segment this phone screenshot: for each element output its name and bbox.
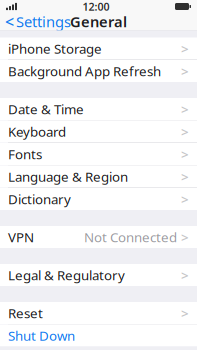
button[interactable]: Legal & Regulatory bbox=[0, 264, 197, 286]
staticText: > bbox=[181, 100, 189, 118]
staticText: Fonts bbox=[8, 145, 42, 163]
staticText: Legal & Regulatory bbox=[8, 266, 125, 284]
staticText: > bbox=[181, 145, 189, 163]
button[interactable]: < bbox=[0, 13, 76, 30]
button[interactable]: VPN bbox=[0, 226, 197, 248]
staticText: Shut Down bbox=[8, 327, 75, 344]
button[interactable]: Shut Down bbox=[0, 324, 197, 346]
button[interactable]: Keyboard bbox=[0, 120, 197, 142]
staticText: < bbox=[5, 11, 14, 32]
staticText: Keyboard bbox=[8, 123, 66, 140]
button[interactable]: Date & Time bbox=[0, 98, 197, 120]
staticText: VPN bbox=[8, 228, 34, 246]
staticText: iPhone Storage bbox=[8, 40, 102, 57]
staticText: > bbox=[181, 123, 189, 140]
staticText: Date & Time bbox=[8, 100, 84, 118]
staticText: Language & Region bbox=[8, 168, 128, 185]
staticText: > bbox=[181, 40, 189, 57]
button[interactable]: Reset bbox=[0, 302, 197, 324]
staticText: > bbox=[181, 304, 189, 322]
staticText: Not Connected bbox=[84, 228, 177, 246]
staticText: Background App Refresh bbox=[8, 62, 161, 80]
staticText: Settings bbox=[16, 12, 71, 31]
staticText: > bbox=[181, 168, 189, 185]
staticText: Reset bbox=[8, 304, 43, 322]
staticText: General bbox=[70, 12, 127, 31]
staticText: > bbox=[181, 190, 189, 208]
staticText: > bbox=[181, 228, 189, 246]
staticText: > bbox=[181, 62, 189, 80]
button[interactable]: iPhone Storage bbox=[0, 37, 197, 59]
staticText: Dictionary bbox=[8, 190, 71, 208]
button[interactable]: Dictionary bbox=[0, 188, 197, 210]
staticText: 12:00 bbox=[82, 0, 109, 14]
button[interactable]: Background App Refresh bbox=[0, 60, 197, 82]
staticText: > bbox=[181, 266, 189, 284]
button[interactable]: Language & Region bbox=[0, 165, 197, 187]
button[interactable]: Fonts bbox=[0, 143, 197, 165]
